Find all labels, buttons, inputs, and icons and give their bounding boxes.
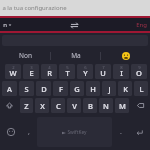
staticText: C <box>56 101 61 111</box>
button[interactable]: K <box>118 81 132 96</box>
button[interactable]: Backspace <box>131 98 149 113</box>
staticText: F <box>59 84 63 94</box>
button[interactable]: Non <box>0 48 50 63</box>
button[interactable]: F <box>53 81 68 96</box>
staticText: L <box>139 84 144 94</box>
button[interactable]: Eng <box>136 21 147 29</box>
staticText: Ma <box>71 51 81 60</box>
staticText: Non <box>19 51 32 60</box>
button[interactable]: L <box>134 81 148 96</box>
staticText: n <box>3 21 7 29</box>
button[interactable]: G <box>70 81 84 96</box>
staticText: N <box>103 101 109 111</box>
staticText: A <box>7 84 12 94</box>
button[interactable]: M <box>115 98 129 113</box>
button[interactable]: 9 <box>131 64 147 79</box>
staticText: Eng <box>136 21 147 29</box>
button[interactable]: n <box>3 21 12 29</box>
staticText: G <box>74 84 80 94</box>
staticText: a la tua configurazione <box>2 4 67 12</box>
button[interactable]: Emoji keyboard <box>0 114 21 150</box>
staticText: 8 <box>120 65 123 71</box>
staticText: Y <box>83 68 88 78</box>
button[interactable]: Enter <box>128 114 150 150</box>
staticText: 9 <box>138 65 141 71</box>
staticText: SwiftKey <box>67 129 87 136</box>
button[interactable]: Switch layout <box>68 19 80 31</box>
staticText: 2 <box>12 65 15 71</box>
button[interactable]: H <box>86 81 100 96</box>
staticText: 5 <box>66 65 69 71</box>
button[interactable]: S <box>19 81 34 96</box>
button[interactable]: 4 <box>41 64 57 79</box>
button[interactable]: X <box>35 98 49 113</box>
button[interactable]: 8 <box>113 64 129 79</box>
button[interactable]: Emoji <box>101 48 150 63</box>
staticText: R <box>47 68 52 78</box>
button[interactable]: J <box>102 81 116 96</box>
button[interactable]: 3 <box>23 64 39 79</box>
staticText: X <box>40 101 45 111</box>
button[interactable]: D <box>36 81 51 96</box>
staticText: 7 <box>102 65 105 71</box>
button[interactable]: Z <box>20 98 33 113</box>
staticText: E <box>29 68 34 78</box>
staticText: . <box>120 127 122 137</box>
staticText: , <box>28 127 30 137</box>
staticText: 3 <box>30 65 33 71</box>
button[interactable]: 6 <box>77 64 93 79</box>
button[interactable]: Ma <box>51 48 100 63</box>
button[interactable]: 7 <box>95 64 111 79</box>
staticText: O <box>136 68 142 78</box>
staticText: M <box>119 101 126 111</box>
staticText: D <box>41 84 47 94</box>
button[interactable]: Space <box>37 117 112 147</box>
staticText: 4 <box>48 65 51 71</box>
staticText: Z <box>24 101 29 111</box>
staticText: U <box>100 68 106 78</box>
staticText: W <box>9 68 17 78</box>
staticText: B <box>88 101 93 111</box>
staticText: J <box>108 84 111 94</box>
button[interactable]: 2 <box>5 64 21 79</box>
button[interactable]: B <box>83 98 97 113</box>
button[interactable]: A <box>2 81 17 96</box>
staticText: K <box>123 84 128 94</box>
button[interactable]: V <box>67 98 81 113</box>
button[interactable]: , <box>21 114 36 150</box>
staticText: I <box>120 68 123 78</box>
staticText: V <box>72 101 77 111</box>
staticText: 6 <box>84 65 87 71</box>
button[interactable]: N <box>99 98 113 113</box>
staticText: T <box>65 68 70 78</box>
staticText: S <box>24 84 29 94</box>
staticText: H <box>90 84 96 94</box>
button[interactable]: 5 <box>59 64 75 79</box>
button[interactable]: Shift <box>1 98 18 113</box>
button[interactable]: C <box>51 98 65 113</box>
